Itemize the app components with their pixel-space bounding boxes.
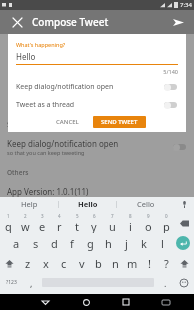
button[interactable]: 2	[17, 213, 34, 233]
staticText: r	[57, 219, 62, 233]
staticText: Cello	[137, 199, 155, 209]
staticText: so that you can keep tweeting	[7, 149, 85, 156]
staticText: b	[95, 256, 102, 271]
button[interactable]: ?	[158, 253, 175, 273]
staticText: 8	[129, 213, 132, 219]
button[interactable]: 0	[157, 213, 175, 233]
button[interactable]: k	[135, 233, 153, 253]
button[interactable]: Send	[169, 13, 187, 31]
button[interactable]: 8	[121, 213, 139, 233]
button[interactable]: 3	[34, 213, 51, 233]
staticText: d	[51, 236, 58, 251]
staticText: v	[79, 256, 85, 271]
button[interactable]: Switch keyboard	[146, 294, 186, 310]
button[interactable]: h	[99, 233, 117, 253]
staticText: Compose Tweet	[32, 15, 109, 29]
button[interactable]: Hello	[59, 197, 116, 211]
staticText: l	[161, 236, 164, 251]
button[interactable]: m	[124, 253, 141, 273]
staticText: Hello	[78, 199, 98, 209]
button[interactable]: 4	[51, 213, 68, 233]
staticText: CANCEL	[56, 118, 79, 126]
button[interactable]: l	[153, 233, 171, 253]
staticText: SEND TWEET	[101, 118, 138, 126]
button[interactable]: j	[117, 233, 135, 253]
staticText: Hello	[16, 51, 36, 62]
staticText: 3	[41, 213, 44, 219]
staticText: o	[145, 219, 152, 233]
staticText: ,	[30, 277, 33, 289]
button[interactable]: .	[156, 273, 174, 292]
staticText: z	[25, 256, 31, 271]
button[interactable]: ?123	[0, 273, 22, 292]
staticText: What's happening?	[16, 41, 66, 48]
button[interactable]: CANCEL	[48, 116, 87, 128]
button[interactable]: n	[107, 253, 124, 273]
button[interactable]: Recents	[106, 294, 146, 310]
staticText: ?	[164, 256, 169, 271]
button[interactable]: SEND TWEET	[93, 116, 146, 128]
button[interactable]: b	[90, 253, 107, 273]
staticText: ?123	[6, 279, 17, 286]
button[interactable]: App Version: 1.0.1(11)	[0, 186, 194, 197]
button[interactable]: 5	[68, 213, 85, 233]
staticText: e	[39, 219, 46, 233]
staticText: n	[112, 256, 119, 271]
staticText: c	[61, 256, 67, 271]
button[interactable]: Shift	[0, 253, 19, 273]
button[interactable]: c	[55, 253, 73, 273]
button[interactable]: f	[63, 233, 81, 253]
button[interactable]: g	[81, 233, 99, 253]
button[interactable]: 1	[0, 213, 17, 233]
staticText: Tweet as a thread	[16, 100, 164, 110]
button[interactable]: 7	[103, 213, 121, 233]
staticText: 2	[24, 213, 27, 219]
staticText: 6	[93, 213, 96, 219]
button[interactable]: Shift	[175, 253, 194, 273]
staticText: p	[163, 219, 170, 233]
button[interactable]: !	[141, 253, 158, 273]
button[interactable]: Keep dialog/notification open	[8, 82, 186, 92]
staticText: 7:34	[180, 1, 192, 9]
staticText: Keep dialog/notification open	[7, 138, 119, 149]
button[interactable]: Help	[0, 197, 58, 211]
staticText: q	[5, 219, 12, 233]
button[interactable]: z	[19, 253, 37, 273]
staticText: Help	[21, 199, 38, 209]
button[interactable]: Keep dialog/notification open	[0, 138, 194, 156]
button[interactable]: 9	[139, 213, 157, 233]
button[interactable]: v	[73, 253, 90, 273]
button[interactable]: Back	[25, 294, 66, 310]
button[interactable]: Enter	[171, 233, 194, 253]
staticText: Others	[7, 168, 29, 177]
button[interactable]: Cello	[117, 197, 174, 211]
button[interactable]: d	[45, 233, 63, 253]
staticText: a	[13, 236, 20, 251]
button[interactable]: x	[37, 253, 55, 273]
button[interactable]: Voice input	[174, 197, 194, 211]
button[interactable]: s	[26, 233, 45, 253]
staticText: w	[21, 219, 30, 233]
button[interactable]: Backspace	[175, 213, 194, 233]
staticText: t	[75, 219, 79, 233]
staticText: i	[129, 219, 132, 233]
button[interactable]: Home	[66, 294, 106, 310]
button[interactable]: Emoji	[174, 273, 194, 292]
button[interactable]: a	[7, 233, 26, 253]
button[interactable]: 6	[85, 213, 103, 233]
staticText: h	[105, 236, 112, 251]
staticText: !	[148, 256, 151, 271]
staticText: s	[33, 236, 39, 251]
button[interactable]: Tweet as a thread	[8, 100, 186, 110]
staticText: 5	[76, 213, 79, 219]
staticText: 9	[147, 213, 150, 219]
staticText: f	[70, 236, 74, 251]
staticText: m	[127, 256, 138, 271]
button[interactable]: Close	[8, 13, 26, 31]
staticText: 1	[7, 213, 10, 219]
staticText: u	[109, 219, 116, 233]
staticText: y	[91, 219, 97, 233]
staticText: 4	[58, 213, 61, 219]
button[interactable]: ,	[22, 273, 40, 292]
